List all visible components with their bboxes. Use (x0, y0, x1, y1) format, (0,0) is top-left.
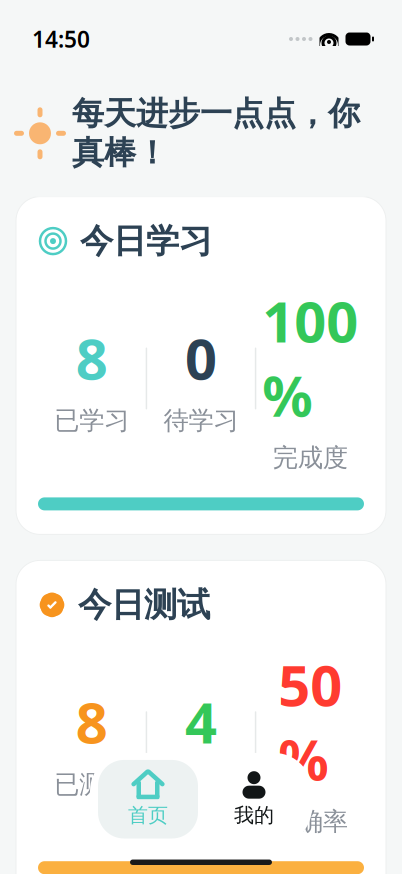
staticText: 今日测试 (78, 584, 210, 625)
staticText: 我的 (234, 803, 274, 827)
staticText: 正确率 (273, 806, 348, 837)
staticText: 50% (278, 647, 342, 796)
staticText: 首页 (128, 803, 168, 827)
staticText: 0 (185, 321, 217, 395)
staticText: 已学习 (54, 405, 129, 436)
staticText: 4 (185, 684, 217, 759)
staticText: 今日学习 (80, 221, 212, 261)
button[interactable]: 我的 (204, 760, 304, 838)
staticText: 已测试 (54, 769, 129, 800)
staticText: 正确 (176, 769, 226, 800)
staticText: 14:50 (32, 24, 90, 54)
button[interactable]: 首页 (98, 760, 198, 838)
staticText: 待学习 (163, 405, 238, 436)
staticText: 8 (76, 321, 108, 395)
staticText: 完成度 (273, 442, 348, 473)
staticText: 8 (76, 684, 108, 759)
staticText: 100% (262, 284, 358, 432)
staticText: 每天进步一点点，你真棒！ (72, 94, 360, 173)
